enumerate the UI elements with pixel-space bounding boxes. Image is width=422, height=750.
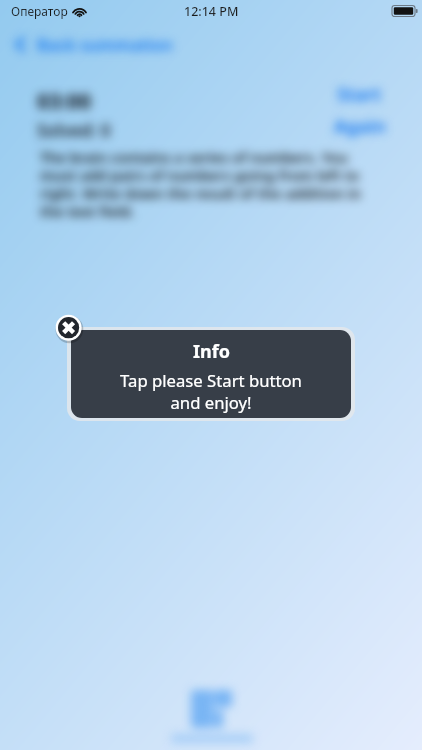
button[interactable]: Back summation: [15, 33, 173, 56]
staticText: The brain contains a series of numbers. …: [40, 147, 378, 221]
staticText: Tap please Start button and enjoy!: [120, 369, 302, 414]
staticText: Back summation: [37, 33, 173, 56]
button[interactable]: Again: [334, 113, 386, 138]
staticText: 03:00: [37, 87, 91, 116]
button[interactable]: Close: [52, 311, 85, 344]
button[interactable]: Start: [337, 81, 382, 106]
staticText: Оператор: [11, 3, 68, 19]
staticText: Solved: 0: [37, 119, 111, 142]
staticText: Info: [193, 339, 230, 364]
button[interactable]: Info: [71, 330, 351, 418]
staticText: 12:14 PM: [184, 3, 239, 20]
